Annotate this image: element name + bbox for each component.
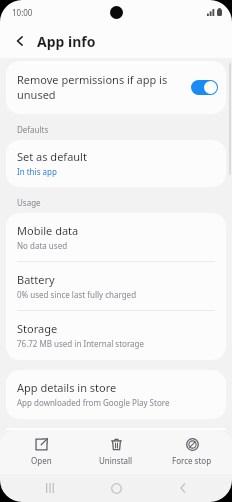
staticText: Mobile data xyxy=(17,223,79,238)
staticText: Defaults xyxy=(17,124,49,135)
staticText: Uninstall xyxy=(99,455,133,466)
staticText: Open xyxy=(31,455,52,466)
staticText: App info xyxy=(37,32,96,51)
staticText: Force stop xyxy=(172,455,212,466)
button[interactable]: Open xyxy=(6,434,76,470)
button[interactable]: Uninstall xyxy=(81,434,151,470)
staticText: App downloaded from Google Play Store xyxy=(17,397,170,408)
staticText: Battery xyxy=(17,272,55,287)
staticText: 0% used since last fully charged xyxy=(17,289,137,300)
staticText: No data used xyxy=(17,240,68,251)
staticText: App details in store xyxy=(17,380,117,395)
button[interactable]: Force stop xyxy=(157,434,227,470)
button[interactable]: Remove permissions if app is unused togg… xyxy=(191,80,218,95)
button[interactable]: Storage xyxy=(6,311,226,360)
button[interactable]: App details in store xyxy=(6,370,226,419)
staticText: Remove permissions if app is unused xyxy=(17,72,185,102)
button[interactable]: Home xyxy=(99,474,133,502)
staticText: 76.72 MB used in Internal storage xyxy=(17,338,144,349)
button[interactable]: Battery xyxy=(6,262,226,310)
staticText: 10:00 xyxy=(12,7,33,18)
staticText: In this app xyxy=(17,166,57,177)
staticText: Usage xyxy=(17,197,41,208)
button[interactable]: Mobile data xyxy=(6,213,226,261)
button[interactable]: Navigate up xyxy=(9,30,31,52)
staticText: Storage xyxy=(17,321,58,336)
button[interactable]: Remove permissions if app is unused xyxy=(6,61,226,114)
staticText: Set as default xyxy=(17,149,87,164)
button[interactable]: Recent apps xyxy=(33,474,67,502)
button[interactable]: Set as default xyxy=(6,140,226,187)
button[interactable]: Back xyxy=(166,474,200,502)
